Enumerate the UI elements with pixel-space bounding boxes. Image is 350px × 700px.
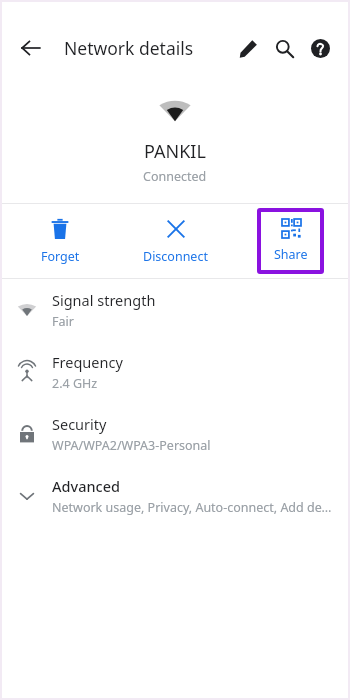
button[interactable]: Signal strength (2, 279, 348, 341)
staticText: Share (274, 246, 308, 263)
staticText: Network usage, Privacy, Auto-connect, Ad… (52, 499, 334, 516)
button[interactable]: Share (257, 208, 324, 274)
staticText: 2.4 GHz (52, 375, 98, 392)
staticText: PANKIL (144, 139, 206, 164)
button[interactable]: Back (10, 27, 52, 69)
staticText: Disconnect (143, 248, 208, 265)
staticText: Signal strength (52, 290, 156, 310)
button[interactable]: Frequency (2, 341, 348, 403)
staticText: Network details (64, 36, 194, 60)
staticText: Forget (41, 248, 80, 265)
button[interactable]: Advanced (2, 465, 348, 527)
staticText: Fair (52, 313, 74, 330)
button[interactable]: Forget (2, 218, 118, 265)
staticText: WPA/WPA2/WPA3-Personal (52, 437, 211, 454)
staticText: Connected (143, 168, 207, 185)
button[interactable]: Security (2, 403, 348, 465)
staticText: Advanced (52, 476, 120, 496)
staticText: Frequency (52, 352, 123, 372)
button[interactable]: Search (266, 30, 302, 66)
button[interactable]: Edit (230, 30, 266, 66)
button[interactable]: Help (302, 30, 338, 66)
staticText: Security (52, 414, 107, 434)
button[interactable]: Disconnect (118, 218, 233, 265)
